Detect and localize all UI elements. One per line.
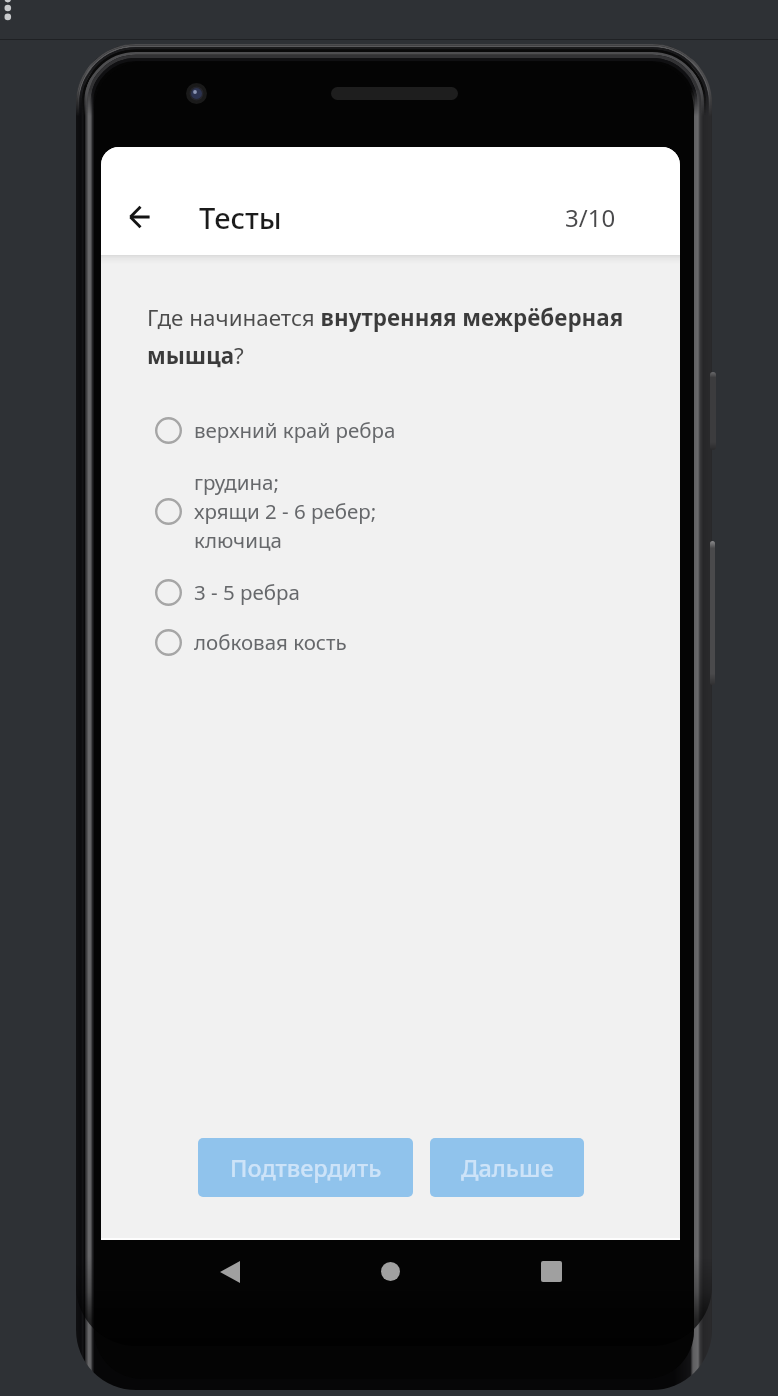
button[interactable]: More options bbox=[0, 0, 24, 30]
button[interactable]: Home bbox=[381, 1262, 400, 1281]
button[interactable]: Back bbox=[114, 191, 166, 243]
staticText: 3/10 bbox=[565, 201, 616, 234]
staticText: верхний край ребра bbox=[194, 416, 396, 444]
staticText: Тесты bbox=[199, 198, 282, 237]
button[interactable]: Дальше bbox=[430, 1138, 584, 1197]
button[interactable]: Back bbox=[220, 1261, 240, 1283]
staticText: лобковая кость bbox=[194, 628, 347, 656]
button[interactable]: лобковая кость bbox=[101, 616, 680, 668]
staticText: Где начинается внутренняя межрёберная мы… bbox=[147, 302, 644, 370]
staticText: 3 - 5 ребра bbox=[194, 578, 300, 606]
staticText: Подтвердить bbox=[230, 1152, 382, 1184]
button[interactable]: Recent apps bbox=[541, 1261, 562, 1282]
staticText: грудина; хрящи 2 - 6 ребер; ключица bbox=[194, 468, 377, 554]
button[interactable]: Подтвердить bbox=[198, 1138, 413, 1197]
button[interactable]: грудина; хрящи 2 - 6 ребер; ключица bbox=[101, 461, 680, 561]
button[interactable]: 3 - 5 ребра bbox=[101, 566, 680, 618]
staticText: Дальше bbox=[461, 1152, 554, 1184]
button[interactable]: верхний край ребра bbox=[101, 404, 680, 456]
